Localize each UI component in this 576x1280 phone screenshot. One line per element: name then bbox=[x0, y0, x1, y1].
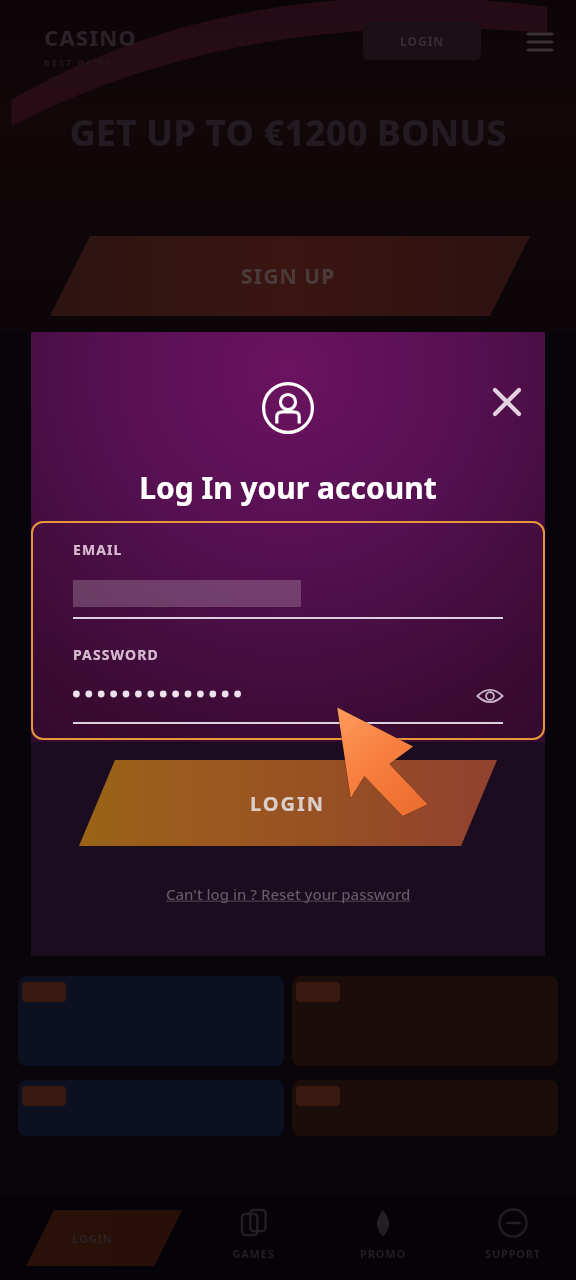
staticText: SIGN UP bbox=[0, 262, 576, 291]
staticText: PASSWORD bbox=[73, 645, 159, 664]
button[interactable] bbox=[292, 1080, 558, 1136]
staticText: CASINO bbox=[44, 22, 137, 52]
staticText: LOGIN bbox=[72, 1231, 113, 1246]
button[interactable]: Show password bbox=[473, 679, 507, 713]
other: Tap LOGIN bbox=[332, 698, 436, 816]
staticText: Can't log in ? Reset your password bbox=[166, 884, 411, 904]
other: Account bbox=[262, 382, 314, 434]
button[interactable]: LOGIN bbox=[363, 22, 481, 60]
button[interactable] bbox=[18, 976, 284, 1066]
button[interactable]: Close bbox=[488, 383, 526, 421]
button[interactable]: SUPPORT bbox=[458, 1206, 568, 1261]
staticText: PROMO bbox=[360, 1246, 406, 1261]
button[interactable]: Can't log in ? Reset your password bbox=[0, 874, 576, 914]
staticText: LOGIN bbox=[250, 790, 326, 817]
button[interactable]: GAMES bbox=[198, 1206, 308, 1261]
button[interactable]: PROMO bbox=[328, 1206, 438, 1261]
staticText: LOGIN bbox=[400, 33, 445, 49]
staticText: GAMES bbox=[232, 1246, 275, 1261]
button[interactable]: LOGIN bbox=[28, 1210, 156, 1266]
staticText: EMAIL bbox=[73, 540, 123, 559]
staticText: SUPPORT bbox=[485, 1246, 541, 1261]
button[interactable]: Menu bbox=[520, 22, 560, 62]
staticText: BEST GAMES bbox=[44, 56, 119, 68]
staticText: GET UP TO €1200 BONUS bbox=[0, 108, 576, 157]
button[interactable]: LOGIN bbox=[0, 760, 576, 846]
staticText: Log In your account bbox=[0, 467, 576, 508]
button[interactable] bbox=[18, 1080, 284, 1136]
button[interactable] bbox=[292, 976, 558, 1066]
